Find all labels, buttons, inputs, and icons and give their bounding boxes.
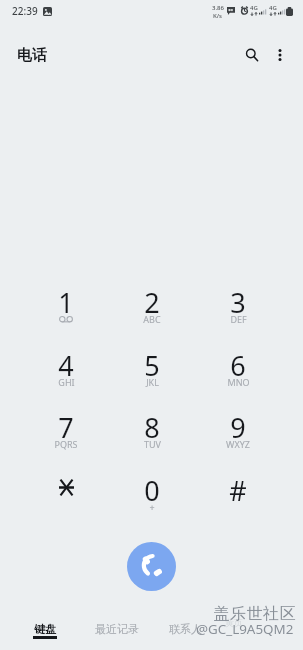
staticText: 4 (58, 347, 74, 384)
staticText: # (229, 472, 247, 509)
button[interactable]: 6 (195, 335, 281, 398)
staticText: 黄页 (225, 617, 243, 628)
button[interactable]: 9 (195, 397, 281, 460)
staticText: MNO (227, 376, 250, 388)
staticText: 4G (269, 4, 277, 12)
staticText: 4G (250, 4, 258, 12)
staticText: @GC_L9A5QM2 (196, 620, 294, 638)
button[interactable] (23, 460, 109, 523)
staticText: 联系人 (169, 622, 202, 636)
button[interactable]: More options (266, 41, 294, 69)
staticText: 键盘 (34, 622, 56, 636)
button[interactable]: # (195, 460, 281, 523)
staticText: 5 (144, 347, 160, 384)
staticText: 最近记录 (95, 622, 139, 636)
button[interactable]: 2 (109, 272, 195, 335)
button[interactable]: 4 (23, 335, 109, 398)
staticText: DEF (230, 313, 247, 325)
staticText: K/s (213, 12, 223, 20)
button[interactable]: 1 (23, 272, 109, 335)
staticText: 7 (58, 409, 74, 446)
staticText: PQRS (54, 438, 78, 450)
button[interactable]: 3 (195, 272, 281, 335)
staticText: 2 (144, 284, 160, 321)
staticText: 电话 (17, 46, 47, 65)
staticText: + (149, 501, 155, 513)
button[interactable]: 0 (109, 460, 195, 523)
button[interactable]: 键盘 (25, 612, 64, 648)
button[interactable]: 7 (23, 397, 109, 460)
staticText: 盖乐世社区 (213, 604, 296, 624)
staticText: 3.86 (212, 4, 224, 12)
button[interactable]: 5 (109, 335, 195, 398)
button[interactable]: Call (127, 542, 176, 591)
staticText: JKL (146, 376, 159, 388)
staticText: 6 (230, 347, 246, 384)
staticText: 8 (144, 409, 160, 446)
button[interactable]: 8 (109, 397, 195, 460)
staticText: 0 (144, 472, 160, 509)
staticText: 1 (58, 284, 74, 321)
staticText: 22:39 (12, 4, 38, 18)
staticText: WXYZ (226, 438, 250, 450)
button[interactable]: Search (236, 39, 268, 71)
staticText: 9 (230, 409, 246, 446)
button[interactable]: 最近记录 (88, 612, 146, 648)
staticText: TUV (144, 438, 161, 450)
staticText: 3 (230, 284, 246, 321)
staticText: GHI (58, 376, 75, 388)
staticText: ABC (143, 313, 161, 325)
button[interactable]: 联系人 (164, 612, 207, 648)
